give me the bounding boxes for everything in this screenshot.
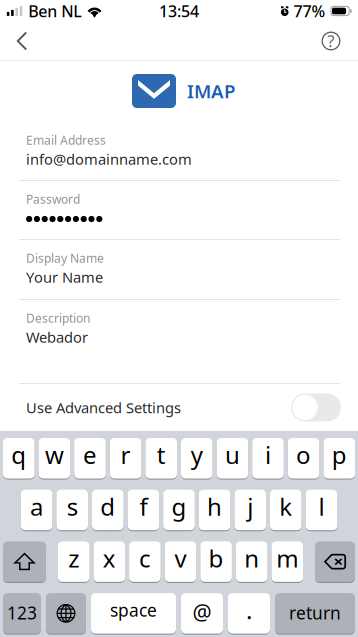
button[interactable]: 123 [3, 593, 41, 634]
button[interactable]: return [275, 593, 355, 634]
staticText: IMAP [187, 79, 235, 103]
staticText: Use Advanced Settings [26, 398, 181, 417]
button[interactable]: a [21, 490, 52, 530]
staticText: 123 [7, 601, 37, 624]
button[interactable]: @ [181, 593, 223, 634]
button[interactable]: Delete [315, 541, 355, 582]
button[interactable]: f [128, 490, 159, 530]
button[interactable]: x [93, 541, 125, 582]
button[interactable]: z [58, 541, 89, 582]
staticText: r [121, 439, 131, 471]
staticText: Description [26, 310, 90, 326]
staticText: i [265, 439, 271, 471]
staticText: return [289, 601, 341, 624]
staticText: p [332, 439, 347, 471]
button[interactable]: p [323, 438, 355, 478]
button[interactable]: n [236, 541, 267, 582]
button[interactable]: l [306, 490, 337, 530]
staticText: x [103, 542, 116, 574]
button[interactable]: Shift [3, 541, 46, 582]
staticText: v [174, 542, 186, 574]
staticText: space [110, 598, 157, 621]
button[interactable]: Use Advanced Settings [0, 384, 358, 431]
staticText: b [209, 542, 224, 574]
button[interactable]: h [199, 490, 230, 530]
staticText: c [139, 542, 151, 574]
button[interactable]: e [74, 438, 106, 478]
staticText: s [67, 490, 78, 522]
button[interactable]: k [270, 490, 302, 530]
staticText: o [296, 439, 311, 471]
staticText: Webador [26, 327, 88, 347]
staticText: w [45, 439, 64, 471]
staticText: j [247, 490, 253, 522]
button[interactable]: j [234, 490, 266, 530]
staticText: ? [327, 30, 334, 52]
button[interactable]: t [145, 438, 177, 478]
staticText: Display Name [26, 250, 104, 266]
button[interactable]: i [252, 438, 284, 478]
staticText: f [139, 490, 147, 522]
staticText: . [246, 594, 252, 626]
button[interactable]: q [3, 438, 35, 478]
button[interactable]: . [228, 593, 270, 634]
staticText: n [244, 542, 259, 574]
staticText: k [279, 490, 292, 522]
staticText: z [68, 542, 79, 574]
staticText: d [100, 490, 115, 522]
staticText: 77% [293, 0, 325, 22]
staticText: q [11, 439, 26, 471]
button[interactable]: Back [0, 22, 44, 60]
staticText: e [83, 439, 97, 471]
staticText: info@domainname.com [26, 149, 192, 169]
staticText: @ [192, 598, 211, 626]
button[interactable]: d [92, 490, 124, 530]
staticText: Your Name [26, 267, 103, 287]
button[interactable]: o [288, 438, 319, 478]
button[interactable]: g [163, 490, 195, 530]
button[interactable]: v [165, 541, 196, 582]
button[interactable]: y [181, 438, 213, 478]
button[interactable]: r [110, 438, 141, 478]
button[interactable]: m [271, 541, 303, 582]
button[interactable]: u [217, 438, 248, 478]
button[interactable]: Help [309, 22, 353, 60]
button[interactable]: b [200, 541, 232, 582]
button[interactable]: w [39, 438, 70, 478]
staticText: m [276, 542, 298, 574]
staticText: h [207, 490, 222, 522]
staticText: Email Address [26, 132, 106, 148]
staticText: g [171, 490, 186, 522]
staticText: t [157, 439, 166, 471]
staticText: Password [26, 191, 80, 207]
staticText: u [225, 439, 240, 471]
button[interactable]: space [91, 593, 176, 634]
button[interactable]: Next keyboard [46, 593, 86, 634]
staticText: 13:54 [159, 0, 199, 22]
staticText: y [191, 439, 203, 471]
button[interactable]: c [129, 541, 161, 582]
staticText: l [318, 490, 324, 522]
staticText: Ben NL [28, 0, 82, 22]
button[interactable]: s [56, 490, 88, 530]
staticText: a [30, 490, 43, 522]
